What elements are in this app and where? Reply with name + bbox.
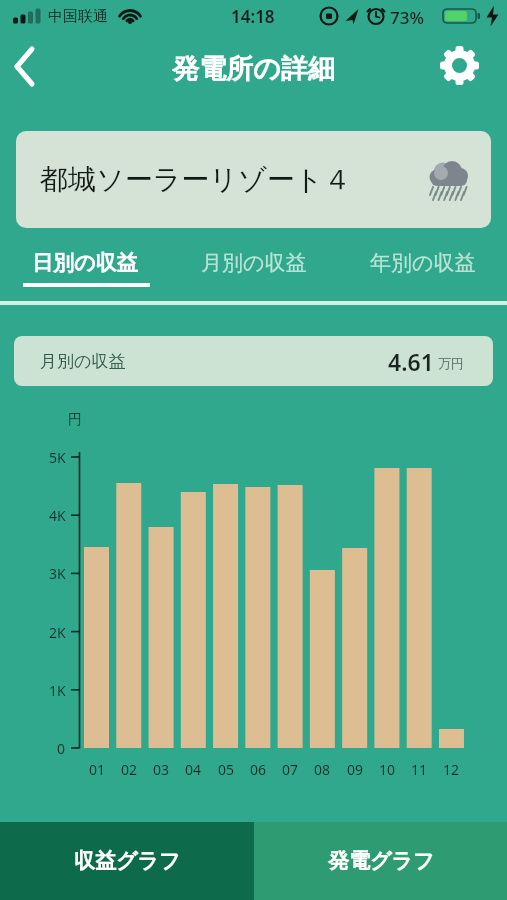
staticText: 11 xyxy=(411,760,428,779)
staticText: 年別の収益 xyxy=(370,250,476,276)
staticText: 0 xyxy=(57,739,66,758)
staticText: 2K xyxy=(49,623,66,642)
button[interactable]: 都城ソーラーリゾート４ xyxy=(16,131,491,228)
staticText: 4K xyxy=(49,506,66,525)
staticText: 万円 xyxy=(438,355,464,371)
staticText: 5K xyxy=(49,448,66,467)
staticText: 収益グラフ xyxy=(74,848,181,874)
staticText: 発電所の詳細 xyxy=(172,52,335,84)
staticText: 02 xyxy=(121,760,138,779)
staticText: 14:18 xyxy=(231,5,275,27)
staticText: 10 xyxy=(379,760,396,779)
staticText: 01 xyxy=(89,760,106,779)
staticText: 03 xyxy=(153,760,170,779)
staticText: 中国联通 xyxy=(48,7,108,26)
button[interactable]: 年別の収益 xyxy=(338,243,507,283)
staticText: 円 xyxy=(68,411,82,429)
button[interactable] xyxy=(4,44,48,88)
staticText: 73% xyxy=(390,6,424,26)
staticText: 09 xyxy=(347,760,364,779)
staticText: 04 xyxy=(185,760,202,779)
staticText: 07 xyxy=(282,760,299,779)
button[interactable]: 月別の収益 xyxy=(169,243,338,283)
staticText: 1K xyxy=(49,681,66,700)
staticText: 12 xyxy=(443,760,460,779)
staticText: 都城ソーラーリゾート４ xyxy=(40,162,352,197)
staticText: 4.61 xyxy=(388,346,434,377)
button[interactable]: 収益グラフ xyxy=(0,822,254,900)
staticText: 月別の収益 xyxy=(40,351,126,372)
staticText: 日別の収益 xyxy=(32,250,138,276)
staticText: 06 xyxy=(250,760,267,779)
button[interactable]: 発電グラフ xyxy=(254,822,507,900)
staticText: 05 xyxy=(218,760,235,779)
button[interactable]: 月別の収益 xyxy=(14,336,493,386)
button[interactable] xyxy=(437,43,482,88)
staticText: 08 xyxy=(314,760,331,779)
button[interactable]: 日別の収益 xyxy=(0,243,169,283)
staticText: 発電グラフ xyxy=(328,848,435,874)
staticText: 月別の収益 xyxy=(201,250,307,276)
staticText: 3K xyxy=(49,564,66,583)
